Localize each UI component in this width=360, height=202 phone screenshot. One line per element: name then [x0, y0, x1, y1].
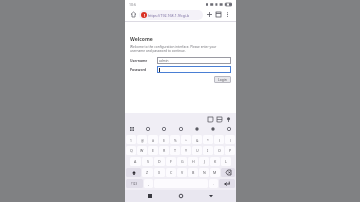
- button[interactable]: Toolbar item 4: [177, 125, 185, 133]
- staticText: Welcome: [130, 36, 153, 43]
- staticText: ?123: [131, 182, 138, 186]
- button[interactable]: Y: [181, 146, 191, 155]
- staticText: Login: [218, 77, 227, 82]
- button[interactable]: A: [130, 157, 141, 166]
- staticText: (: [219, 138, 220, 142]
- staticText: N: [203, 170, 206, 175]
- button[interactable]: C: [166, 168, 176, 177]
- button[interactable]: Shift: [126, 168, 141, 177]
- button[interactable]: ?123: [126, 179, 143, 188]
- button[interactable]: Recents: [145, 191, 155, 201]
- staticText: #: [152, 138, 155, 142]
- button[interactable]: *: [203, 135, 213, 144]
- staticText: Y: [185, 148, 188, 153]
- button[interactable]: X: [154, 168, 165, 177]
- button[interactable]: Toolbar item 7: [225, 125, 233, 133]
- staticText: V: [181, 170, 184, 175]
- button[interactable]: Enter: [219, 179, 235, 188]
- button[interactable]: F: [166, 157, 176, 166]
- staticText: Username: [130, 58, 148, 63]
- button[interactable]: &: [192, 135, 202, 144]
- staticText: &: [196, 138, 199, 142]
- button[interactable]: I: [203, 146, 213, 155]
- button[interactable]: K: [210, 157, 220, 166]
- button[interactable]: New tab: [205, 10, 214, 19]
- button[interactable]: D: [154, 157, 165, 166]
- button[interactable]: O: [214, 146, 224, 155]
- staticText: I: [207, 148, 209, 153]
- staticText: %: [174, 138, 177, 142]
- button[interactable]: @: [137, 135, 147, 144]
- button[interactable]: Toolbar item 6: [209, 125, 217, 133]
- staticText: X: [158, 170, 161, 175]
- button[interactable]: [157, 66, 231, 73]
- button[interactable]: H: [188, 157, 198, 166]
- button[interactable]: Home: [176, 191, 186, 201]
- button[interactable]: M: [210, 168, 220, 177]
- button[interactable]: Toolbar item 1: [128, 125, 136, 133]
- staticText: Welcome to the configuration interface. …: [130, 45, 231, 53]
- button[interactable]: Q: [126, 146, 136, 155]
- button[interactable]: Home: [129, 10, 138, 19]
- staticText: E: [152, 148, 154, 153]
- staticText: https://192.168.1.9/cgi-b: [148, 13, 190, 18]
- button[interactable]: Keyboard tool 2: [215, 115, 223, 123]
- button[interactable]: S: [142, 157, 153, 166]
- button[interactable]: Toolbar item 5: [193, 125, 201, 133]
- button[interactable]: N: [199, 168, 209, 177]
- button[interactable]: B: [188, 168, 198, 177]
- button[interactable]: #: [148, 135, 158, 144]
- button[interactable]: Back: [206, 191, 216, 201]
- button[interactable]: %: [170, 135, 180, 144]
- button[interactable]: J: [199, 157, 209, 166]
- button[interactable]: admin: [157, 57, 231, 64]
- button[interactable]: Keyboard tool 3: [224, 115, 232, 123]
- button[interactable]: !: [139, 10, 203, 20]
- button[interactable]: V: [177, 168, 187, 177]
- staticText: W: [140, 148, 144, 153]
- staticText: A: [134, 159, 137, 164]
- button[interactable]: Keyboard tool 1: [206, 115, 214, 123]
- button[interactable]: L: [221, 157, 231, 166]
- button[interactable]: E: [148, 146, 158, 155]
- staticText: K: [214, 159, 217, 164]
- button[interactable]: W: [137, 146, 147, 155]
- staticText: @: [141, 138, 144, 142]
- button[interactable]: Z: [142, 168, 153, 177]
- button[interactable]: Toolbar item 3: [160, 125, 168, 133]
- staticText: H: [192, 159, 195, 164]
- staticText: 10:6: [129, 2, 136, 7]
- button[interactable]: ): [225, 135, 235, 144]
- staticText: R: [163, 148, 166, 153]
- staticText: ): [230, 138, 231, 142]
- staticText: ,: [148, 181, 149, 186]
- button[interactable]: 1: [126, 135, 136, 144]
- staticText: Z: [146, 170, 149, 175]
- button[interactable]: P: [225, 146, 235, 155]
- button[interactable]: Backspace: [221, 168, 235, 177]
- staticText: B: [192, 170, 195, 175]
- button[interactable]: $: [159, 135, 169, 144]
- staticText: *: [207, 138, 209, 142]
- button[interactable]: Login: [214, 76, 231, 83]
- button[interactable]: T: [170, 146, 180, 155]
- staticText: F: [170, 159, 172, 164]
- button[interactable]: Toolbar item 2: [144, 125, 152, 133]
- button[interactable]: ,: [144, 179, 153, 188]
- staticText: admin: [159, 59, 169, 63]
- staticText: .: [213, 181, 214, 186]
- button[interactable]: ^: [181, 135, 191, 144]
- button[interactable]: R: [159, 146, 169, 155]
- staticText: U: [196, 148, 199, 153]
- button[interactable]: More options: [223, 10, 232, 19]
- staticText: G: [181, 159, 184, 164]
- button[interactable]: Tabs: [214, 10, 223, 19]
- button[interactable]: G: [177, 157, 187, 166]
- staticText: L: [225, 159, 227, 164]
- button[interactable]: (: [214, 135, 224, 144]
- staticText: $: [163, 138, 165, 142]
- button[interactable]: U: [192, 146, 202, 155]
- staticText: J: [204, 159, 205, 164]
